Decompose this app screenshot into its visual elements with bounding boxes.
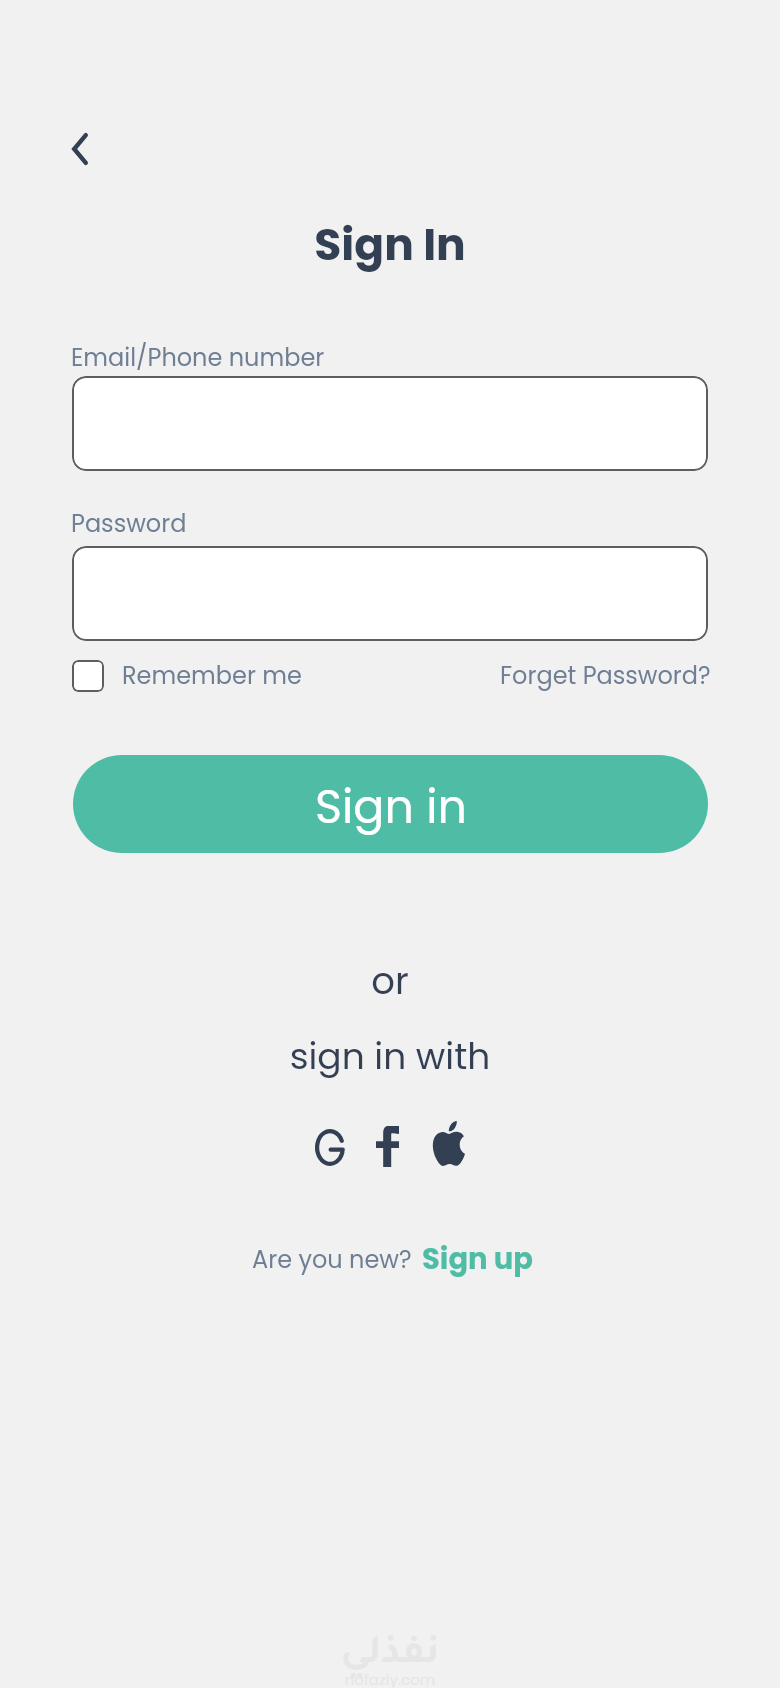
staticText: or	[0, 955, 780, 1007]
staticText: sign in with	[0, 1031, 780, 1081]
button[interactable]: Remember me	[72, 655, 302, 697]
staticText: Email/Phone number	[71, 341, 325, 375]
button[interactable]: Sign in with Facebook	[366, 1119, 409, 1173]
staticText: Forget Password?	[500, 659, 711, 693]
button[interactable]: Sign in	[73, 755, 708, 853]
button[interactable]: Email or phone number input	[72, 376, 708, 471]
button[interactable]: Forget Password?	[494, 653, 714, 701]
staticText: Sign In	[0, 214, 780, 276]
staticText: Remember me	[122, 659, 302, 693]
staticText: Password	[71, 507, 187, 541]
button[interactable]: Sign up	[422, 1239, 534, 1280]
button[interactable]: Sign in with Google	[305, 1119, 354, 1175]
button[interactable]: Password input	[72, 546, 708, 641]
button[interactable]: Sign in with Apple	[421, 1117, 475, 1170]
staticText: Are you new?	[252, 1243, 412, 1277]
button[interactable]: Back	[44, 113, 116, 185]
staticText: Sign in	[315, 775, 467, 839]
